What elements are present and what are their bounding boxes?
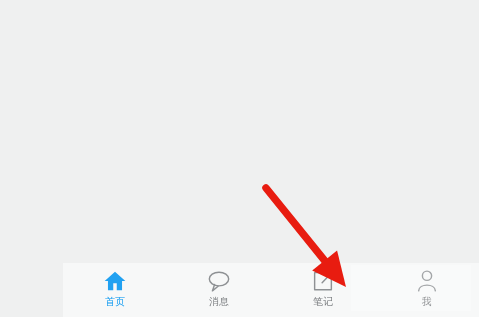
staticText: 消息	[209, 295, 229, 308]
staticText: 我	[422, 295, 432, 308]
staticText: 首页	[105, 295, 125, 308]
button[interactable]: 笔记	[271, 263, 375, 317]
button[interactable]: 首页	[63, 263, 167, 317]
button[interactable]: 消息	[167, 263, 271, 317]
button[interactable]: 我	[375, 263, 479, 317]
staticText: 笔记	[313, 295, 333, 308]
